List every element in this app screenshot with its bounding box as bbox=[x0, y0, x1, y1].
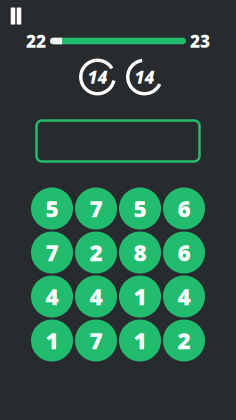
button[interactable]: Hint bbox=[126, 58, 163, 95]
button[interactable]: 7 bbox=[75, 319, 117, 361]
button[interactable]: 5 bbox=[119, 187, 161, 229]
button[interactable]: 4 bbox=[75, 275, 117, 317]
staticText: 5 bbox=[133, 193, 146, 223]
staticText: 2 bbox=[89, 237, 102, 267]
button[interactable]: 2 bbox=[163, 319, 205, 361]
staticText: 6 bbox=[177, 193, 190, 223]
button[interactable]: 1 bbox=[119, 275, 161, 317]
button[interactable]: 4 bbox=[163, 275, 205, 317]
button[interactable]: 1 bbox=[31, 319, 73, 361]
staticText: 7 bbox=[45, 237, 58, 267]
button[interactable]: 7 bbox=[75, 187, 117, 229]
staticText: 7 bbox=[89, 325, 102, 355]
staticText: 8 bbox=[133, 237, 146, 267]
button[interactable]: 1 bbox=[119, 319, 161, 361]
staticText: 4 bbox=[89, 281, 102, 311]
button[interactable]: 8 bbox=[119, 231, 161, 273]
button[interactable]: 4 bbox=[31, 275, 73, 317]
staticText: 1 bbox=[133, 281, 146, 311]
staticText: 5 bbox=[45, 193, 58, 223]
button[interactable]: Pause bbox=[4, 4, 28, 28]
staticText: 7 bbox=[89, 193, 102, 223]
staticText: 2 bbox=[177, 325, 190, 355]
button[interactable]: 2 bbox=[75, 231, 117, 273]
staticText: 6 bbox=[177, 237, 190, 267]
button[interactable]: 6 bbox=[163, 187, 205, 229]
button[interactable]: Hint bbox=[79, 58, 116, 95]
staticText: 1 bbox=[45, 325, 58, 355]
staticText: 14 bbox=[87, 65, 107, 88]
staticText: 23 bbox=[190, 29, 210, 52]
button[interactable]: 5 bbox=[31, 187, 73, 229]
staticText: 4 bbox=[177, 281, 190, 311]
button[interactable]: 6 bbox=[163, 231, 205, 273]
staticText: 1 bbox=[133, 325, 146, 355]
staticText: 4 bbox=[45, 281, 58, 311]
staticText: 14 bbox=[134, 65, 154, 88]
button[interactable]: 7 bbox=[31, 231, 73, 273]
staticText: 22 bbox=[26, 29, 46, 52]
